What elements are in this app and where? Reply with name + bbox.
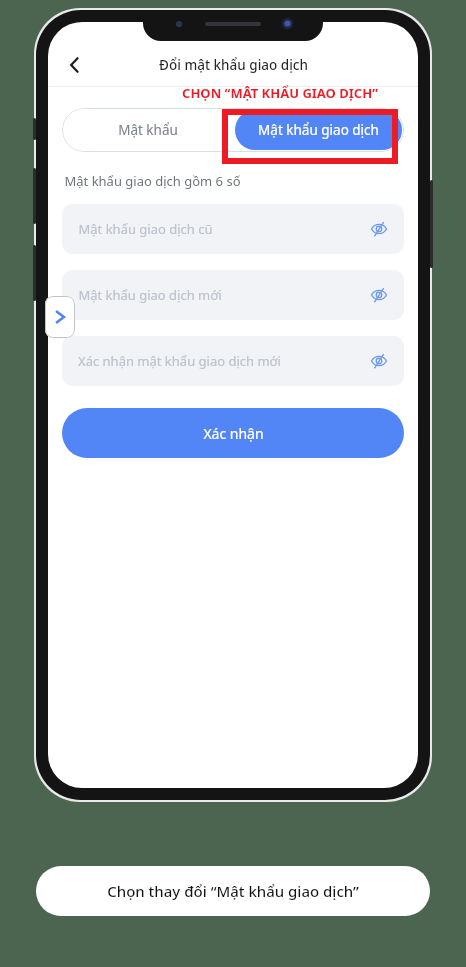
staticText: Mật khẩu giao dịch mới (78, 286, 222, 304)
button[interactable]: Xác nhận mật khẩu giao dịch mới (62, 336, 404, 386)
button[interactable]: Next (45, 296, 75, 338)
staticText: Xác nhận mật khẩu giao dịch mới (78, 352, 281, 370)
button[interactable]: Mật khẩu giao dịch (235, 110, 402, 150)
staticText: Mật khẩu giao dịch gồm 6 số (64, 172, 241, 190)
button[interactable]: Back (58, 48, 92, 82)
staticText: Xác nhận (203, 424, 264, 443)
button[interactable]: Toggle password visibility (364, 214, 394, 244)
staticText: Chọn thay đổi “Mật khẩu giao dịch” (107, 881, 359, 901)
button[interactable]: Xác nhận (62, 408, 404, 458)
button[interactable]: Mật khẩu giao dịch mới (62, 270, 404, 320)
button[interactable]: Mật khẩu giao dịch cũ (62, 204, 404, 254)
staticText: Mật khẩu giao dịch cũ (78, 220, 213, 238)
button[interactable]: Toggle password visibility (364, 280, 394, 310)
button[interactable]: Toggle password visibility (364, 346, 394, 376)
button[interactable]: Mật khẩu (62, 108, 233, 152)
staticText: Mật khẩu giao dịch (258, 121, 379, 139)
staticText: CHỌN “MẬT KHẨU GIAO DỊCH” (182, 84, 378, 102)
staticText: Mật khẩu (118, 121, 178, 139)
staticText: Đổi mật khẩu giao dịch (159, 56, 308, 74)
